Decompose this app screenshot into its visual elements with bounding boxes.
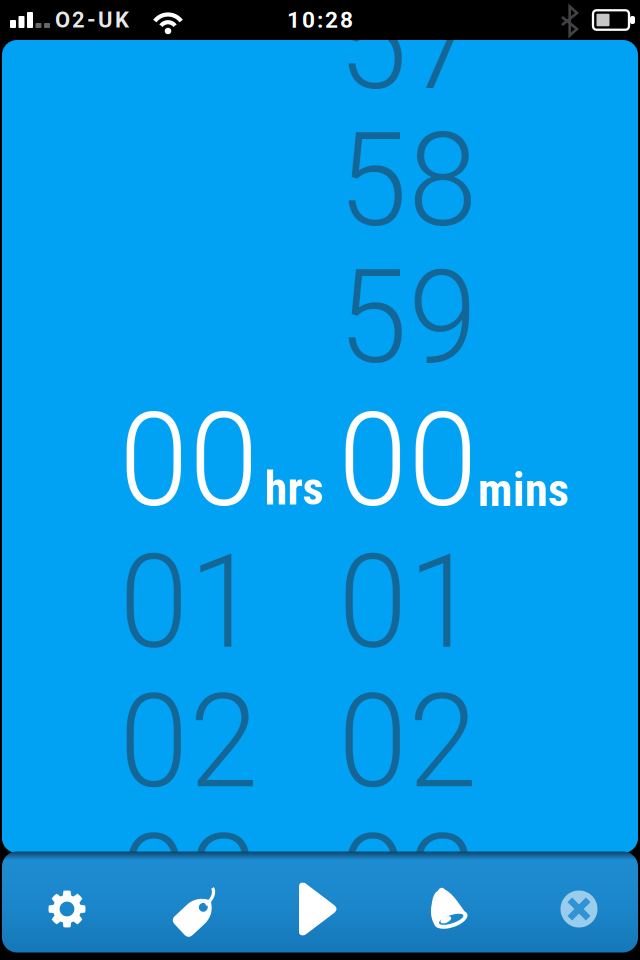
staticText: 1 0 : 2 8 [287,7,353,33]
staticText: 00 [119,384,259,537]
staticText: 59 [338,241,478,394]
staticText: 02 [338,665,478,818]
staticText: hrs [264,461,323,516]
button[interactable]: Start timer [256,859,383,958]
staticText: 03 [119,805,259,958]
staticText: O 2 - U K [55,7,129,33]
button[interactable]: Alarm sound [383,859,510,958]
staticText: 57 [338,0,478,120]
staticText: 01 [119,526,259,679]
staticText: mins [478,463,569,517]
staticText: 02 [119,665,259,818]
staticText: 58 [338,104,478,257]
button[interactable]: Close [510,859,637,958]
staticText: 00 [338,384,478,537]
staticText: 03 [338,805,478,958]
staticText: 01 [338,526,478,679]
button[interactable]: Settings [2,859,129,958]
button[interactable]: Label [129,859,256,958]
